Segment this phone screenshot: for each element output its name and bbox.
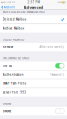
staticText: Account: [4, 5, 15, 9]
button[interactable]: Archive Mailbox: [0, 24, 67, 33]
staticText: MOVE DISCARDED MESSAGES INTO: [3, 10, 45, 14]
staticText: S/MIME: [3, 102, 11, 105]
button[interactable]: S/MIME: [0, 107, 67, 115]
staticText: INCOMING SETTINGS: [3, 56, 29, 60]
button[interactable]: Authentication: [0, 70, 67, 79]
staticText: Use SSL: [3, 64, 12, 67]
staticText: DELETED MESSAGES: [3, 38, 24, 41]
staticText: 2:37 PM: [27, 0, 39, 4]
button[interactable]: Server Port: [0, 88, 67, 97]
staticText: Deleted Mailbox: [3, 18, 26, 21]
staticText: Advanced: [23, 4, 43, 10]
button[interactable]: Account: [0, 4, 15, 10]
staticText: Archive Mailbox: [3, 27, 24, 30]
staticText: Remove: [3, 45, 14, 49]
staticText: Password: [50, 73, 62, 76]
staticText: 993: [20, 91, 26, 94]
button[interactable]: IMAP Path Prefix: [0, 79, 67, 88]
staticText: Server Port: [3, 91, 18, 94]
staticText: S/MIME: [3, 109, 11, 113]
staticText: AT&T: [8, 1, 12, 3]
button[interactable]: Remove: [0, 43, 67, 51]
staticText: 84%: [58, 1, 61, 3]
staticText: LTE: [12, 1, 15, 3]
button[interactable]: Deleted Mailbox: [0, 15, 67, 24]
button[interactable]: Use SSL: [0, 61, 67, 70]
staticText: After one week: [40, 45, 62, 49]
staticText: Authentication: [3, 73, 24, 76]
staticText: IMAP Path Prefix: [3, 82, 26, 85]
